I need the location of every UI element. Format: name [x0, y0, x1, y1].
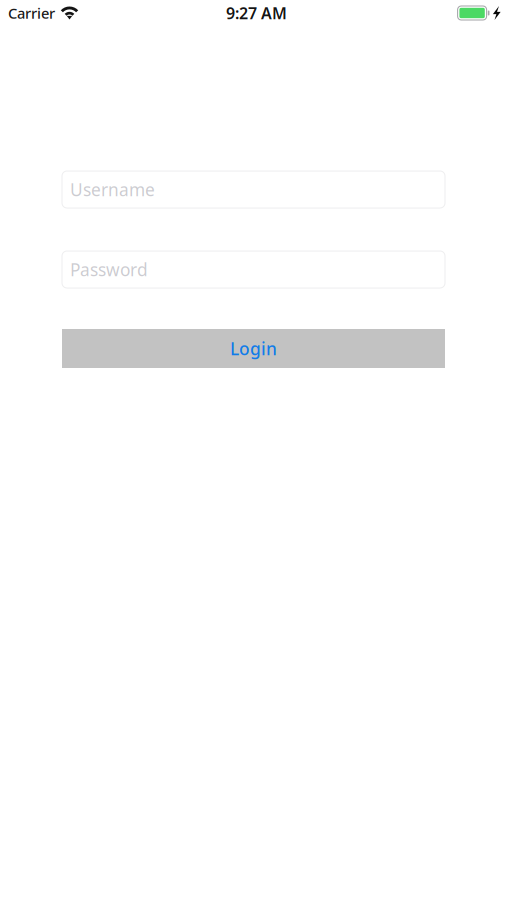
- button[interactable]: Password: [62, 251, 445, 288]
- button[interactable]: Login: [62, 329, 445, 368]
- staticText: 9:27 AM: [226, 2, 287, 24]
- button[interactable]: Username: [62, 171, 445, 208]
- staticText: Password: [70, 258, 148, 281]
- staticText: Username: [70, 178, 155, 201]
- staticText: Login: [230, 337, 277, 360]
- staticText: Carrier: [8, 3, 55, 23]
